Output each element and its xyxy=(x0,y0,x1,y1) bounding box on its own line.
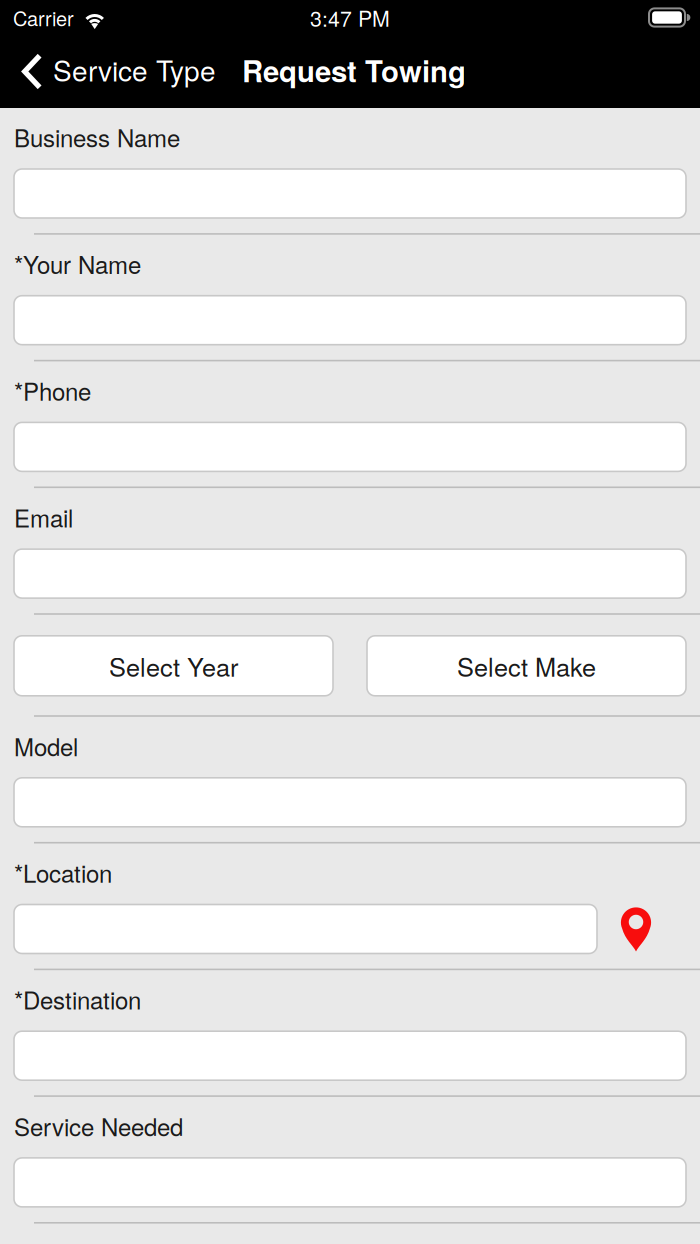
staticText: Service Type xyxy=(53,49,216,89)
button[interactable]: Select Year xyxy=(14,636,333,696)
button[interactable]: Select Make xyxy=(367,636,686,696)
staticText: Select Make xyxy=(457,648,596,684)
staticText: Select Year xyxy=(109,648,238,684)
staticText: 3:47 PM xyxy=(310,2,390,33)
button[interactable]: Service Type xyxy=(0,35,226,108)
staticText: Model xyxy=(14,729,78,763)
staticText: *Location xyxy=(14,855,112,890)
staticText: Carrier xyxy=(13,3,74,32)
staticText: *Phone xyxy=(14,373,91,408)
staticText: Business Name xyxy=(14,120,180,154)
staticText: Email xyxy=(14,500,73,534)
button[interactable]: Use current location xyxy=(620,906,652,951)
staticText: Request Towing xyxy=(242,49,466,91)
staticText: *Destination xyxy=(14,982,141,1016)
staticText: Service Needed xyxy=(14,1109,183,1143)
staticText: *Your Name xyxy=(14,246,141,281)
